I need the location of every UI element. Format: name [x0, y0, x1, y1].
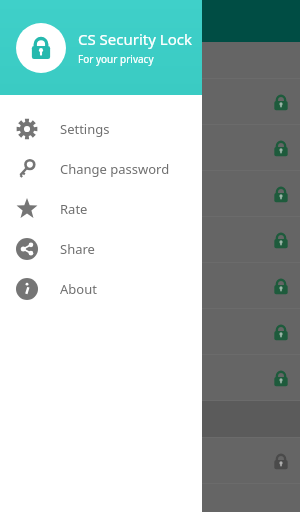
button[interactable]: Rate [0, 189, 202, 229]
staticText: Change password [60, 160, 170, 178]
staticText: Settings [60, 120, 110, 138]
button[interactable]: Locked [0, 263, 300, 309]
other: Locked [272, 231, 290, 249]
other: Locked [272, 323, 290, 341]
button[interactable]: Locked [0, 125, 300, 171]
other: Locked [272, 185, 290, 203]
staticText: CS Security Lock [78, 29, 192, 49]
other: Locked [272, 452, 290, 470]
button[interactable]: Settings [0, 109, 202, 149]
button[interactable]: Locked [0, 438, 300, 484]
other: Locked [272, 369, 290, 387]
button[interactable]: Locked [0, 217, 300, 263]
button[interactable]: Locked [0, 309, 300, 355]
button[interactable]: Change password [0, 149, 202, 189]
button[interactable]: Locked [0, 355, 300, 401]
staticText: Share [60, 240, 95, 258]
staticText: Rate [60, 200, 88, 218]
other: Locked [272, 93, 290, 111]
staticText: About [60, 280, 97, 298]
button[interactable]: Share [0, 229, 202, 269]
other: Locked [272, 139, 290, 157]
staticText: For your privacy [78, 52, 154, 66]
button[interactable]: Locked [0, 171, 300, 217]
button[interactable]: Locked [0, 79, 300, 125]
other: Locked [272, 277, 290, 295]
button[interactable]: About [0, 269, 202, 309]
